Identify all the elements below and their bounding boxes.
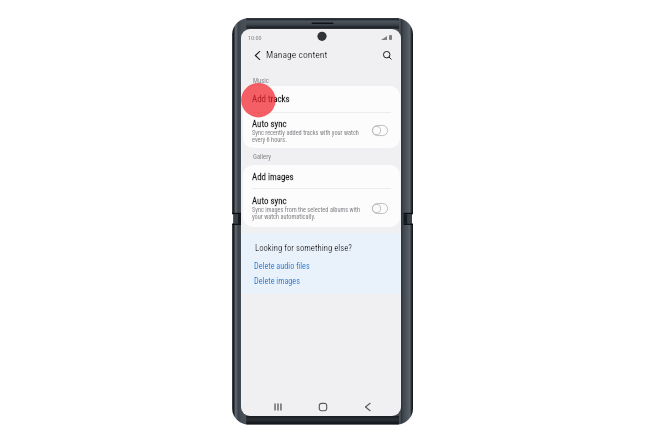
staticText: Delete audio files: [254, 261, 310, 271]
staticText: Delete images: [254, 276, 300, 286]
staticText: Music: [253, 77, 269, 85]
staticText: 10:00: [248, 34, 262, 41]
button[interactable]: Add tracks: [243, 86, 400, 112]
staticText: Sync images from the selected albums wit…: [252, 206, 360, 220]
staticText: Looking for something else?: [255, 243, 352, 253]
button[interactable]: Home: [312, 396, 334, 416]
staticText: Gallery: [253, 153, 271, 161]
button[interactable]: Delete images: [254, 276, 300, 286]
staticText: Sync recently added tracks with your wat…: [252, 129, 359, 143]
button[interactable]: Auto sync: [243, 113, 400, 148]
staticText: Manage content: [266, 49, 328, 60]
button[interactable]: Search: [380, 48, 394, 62]
button[interactable]: Delete audio files: [254, 261, 310, 271]
button[interactable]: Add images: [243, 165, 400, 188]
staticText: Add tracks: [252, 94, 290, 104]
staticText: Auto sync: [252, 119, 287, 129]
staticText: Auto sync: [252, 196, 287, 206]
staticText: Add images: [252, 172, 294, 182]
button[interactable]: Navigate up: [250, 48, 264, 62]
button[interactable]: Back: [356, 396, 378, 416]
button[interactable]: Auto sync: [243, 189, 400, 227]
button[interactable]: Recent apps: [267, 396, 289, 416]
